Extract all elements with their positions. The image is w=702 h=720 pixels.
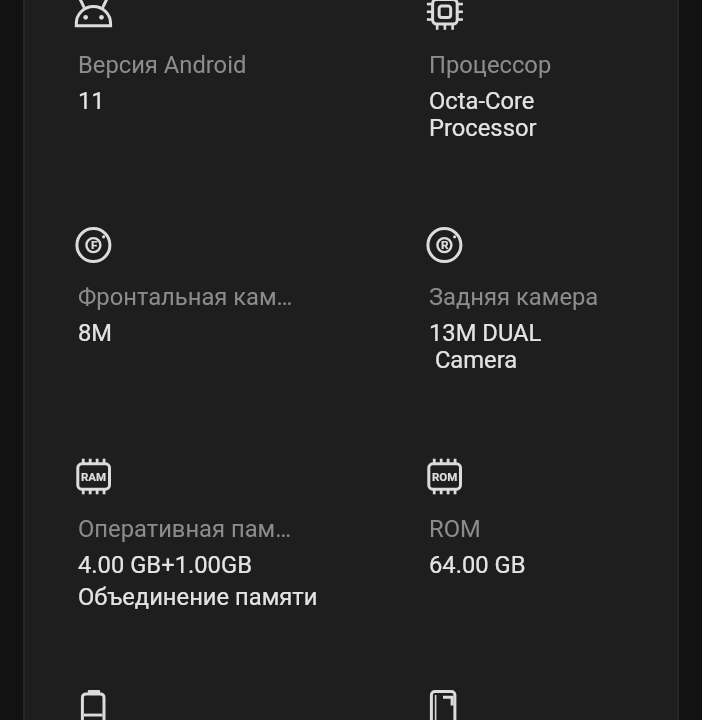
staticText: Octa-Core Processor (429, 87, 537, 142)
other: Rear camera (427, 224, 471, 268)
staticText: Оперативная пам… (78, 515, 292, 543)
other: Processor (427, 0, 471, 36)
staticText: Процессор (429, 51, 552, 79)
staticText: R (441, 238, 449, 252)
staticText: Версия Android (78, 51, 247, 79)
button[interactable]: Front camera (76, 224, 376, 424)
staticText: Фронтальная кам… (78, 283, 293, 311)
button[interactable]: Battery (76, 688, 376, 720)
button[interactable]: Android version (76, 0, 376, 192)
staticText: F (91, 238, 98, 252)
staticText: 4.00 GB+1.00GB (78, 551, 252, 579)
other: ROM storage (427, 456, 471, 500)
staticText: Объединение памяти (78, 583, 318, 611)
staticText: 13M DUAL Camera (429, 319, 542, 374)
other: Display (427, 688, 471, 720)
other: Front camera (76, 224, 120, 268)
staticText: ROM (429, 515, 481, 543)
staticText: 11 (78, 87, 105, 115)
button[interactable]: Display (427, 688, 702, 720)
button[interactable]: ROM storage (427, 456, 702, 656)
other: Android version (76, 0, 120, 36)
button[interactable]: RAM memory (76, 456, 376, 656)
staticText: ROM (432, 470, 458, 483)
other: RAM memory (76, 456, 120, 500)
staticText: 8M (78, 319, 113, 347)
staticText: RAM (81, 470, 107, 483)
staticText: Задняя камера (429, 283, 599, 311)
button[interactable]: Processor (427, 0, 702, 192)
other: Battery (76, 688, 120, 720)
staticText: 64.00 GB (429, 551, 526, 579)
button[interactable]: Rear camera (427, 224, 702, 424)
